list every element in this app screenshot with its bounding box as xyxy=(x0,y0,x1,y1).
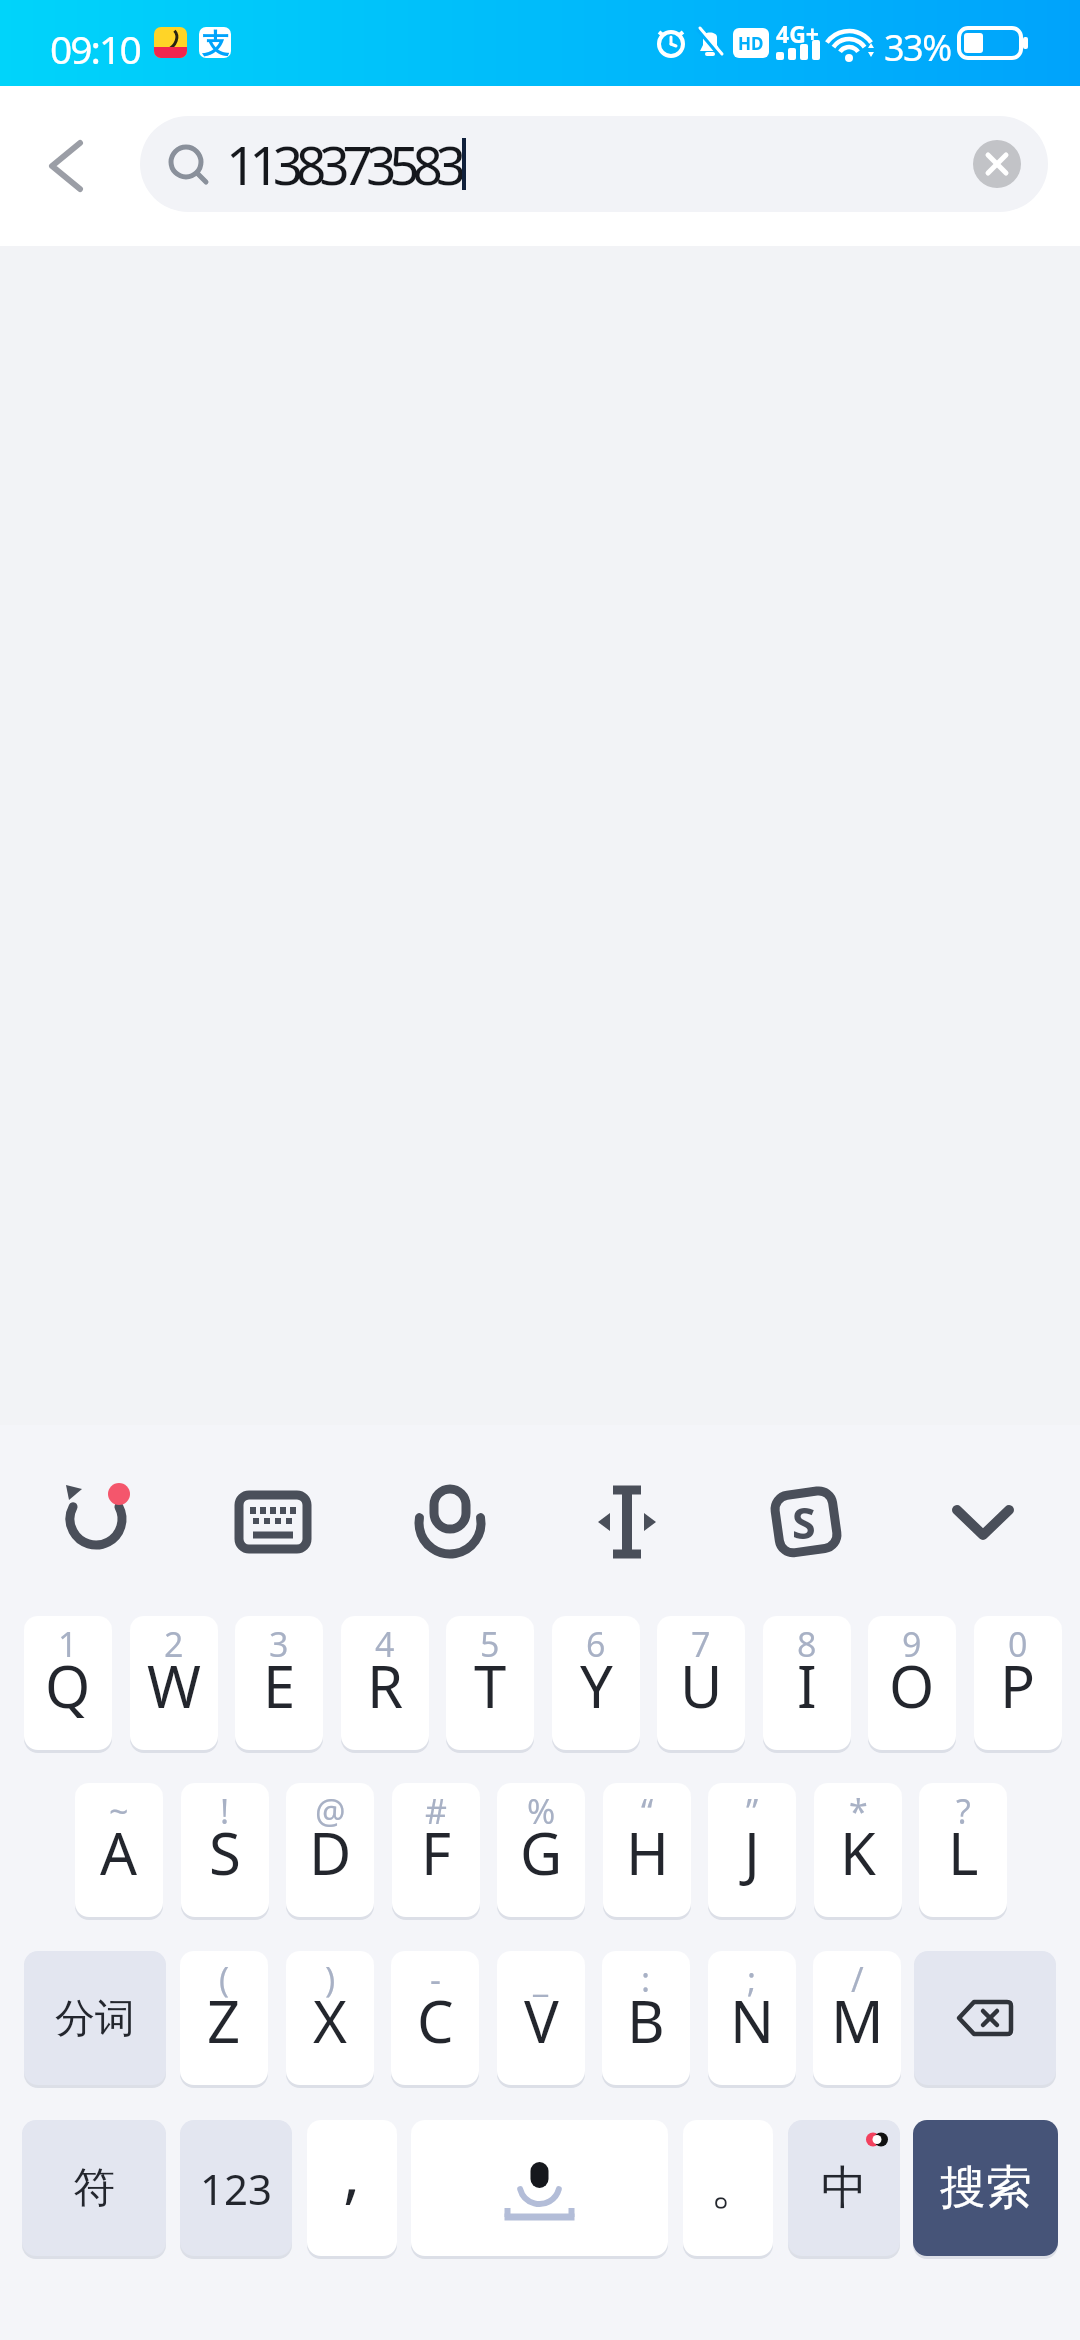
staticText: “ xyxy=(641,1788,654,1834)
button[interactable]: 中 xyxy=(788,2120,900,2256)
button[interactable]: 1 xyxy=(24,1616,112,1750)
staticText: / xyxy=(851,1956,864,2002)
button[interactable]: 2 xyxy=(130,1616,218,1750)
staticText: P xyxy=(1000,1646,1036,1725)
button[interactable]: 8 xyxy=(763,1616,851,1750)
button[interactable] xyxy=(973,140,1021,188)
button[interactable]: 4 xyxy=(341,1616,429,1750)
button[interactable]: ? xyxy=(919,1783,1007,1917)
button[interactable]: ” xyxy=(708,1783,796,1917)
staticText: 。 xyxy=(710,2153,762,2219)
button[interactable]: _ xyxy=(497,1951,585,2085)
staticText: 0 xyxy=(1008,1621,1028,1667)
button[interactable]: 3 xyxy=(235,1616,323,1750)
staticText: ” xyxy=(746,1788,759,1834)
staticText: 搜索 xyxy=(940,2159,1032,2217)
staticText: 5 xyxy=(480,1621,500,1667)
staticText: Q xyxy=(45,1646,91,1725)
staticText: G xyxy=(520,1813,563,1892)
button[interactable] xyxy=(582,1477,672,1567)
staticText: 4 xyxy=(375,1621,395,1667)
button[interactable]: ! xyxy=(181,1783,269,1917)
staticText: # xyxy=(425,1788,447,1834)
staticText: Z xyxy=(207,1981,241,2060)
staticText: 09:10 xyxy=(50,22,140,75)
button[interactable]: 0 xyxy=(974,1616,1062,1750)
button[interactable]: - xyxy=(391,1951,479,2085)
staticText: 9 xyxy=(902,1621,922,1667)
staticText: 6 xyxy=(586,1621,606,1667)
staticText: D xyxy=(309,1813,352,1892)
staticText: ) xyxy=(325,1956,336,2002)
staticText: % xyxy=(527,1788,556,1834)
staticText: Y xyxy=(580,1646,613,1725)
staticText: 符 xyxy=(73,2162,115,2215)
button[interactable]: S xyxy=(760,1477,850,1567)
button[interactable]: # xyxy=(392,1783,480,1917)
button[interactable]: 符 xyxy=(22,2120,166,2256)
button[interactable]: 1138373583 xyxy=(140,116,1048,212)
staticText: L xyxy=(948,1813,979,1892)
button[interactable]: 123 xyxy=(180,2120,292,2256)
staticText: S xyxy=(209,1813,241,1892)
button[interactable]: ( xyxy=(180,1951,268,2085)
staticText: 33% xyxy=(884,23,951,72)
button[interactable] xyxy=(914,1951,1056,2085)
button[interactable]: * xyxy=(814,1783,902,1917)
button[interactable]: 5 xyxy=(446,1616,534,1750)
button[interactable]: , xyxy=(307,2120,397,2256)
staticText: 1 xyxy=(58,1621,78,1667)
staticText: N xyxy=(730,1981,775,2060)
staticText: HD xyxy=(738,32,764,55)
staticText: T xyxy=(474,1646,507,1725)
staticText: B xyxy=(627,1981,665,2060)
staticText: O xyxy=(889,1646,935,1725)
button[interactable]: “ xyxy=(603,1783,691,1917)
button[interactable]: 分词 xyxy=(24,1951,166,2085)
button[interactable] xyxy=(411,2120,668,2256)
staticText: 4G+ xyxy=(776,18,819,49)
staticText: A xyxy=(100,1813,138,1892)
staticText: 支 xyxy=(202,27,229,58)
button[interactable] xyxy=(938,1477,1028,1567)
staticText: H xyxy=(626,1813,669,1892)
button[interactable]: 6 xyxy=(552,1616,640,1750)
staticText: 123 xyxy=(200,2160,273,2217)
button[interactable]: : xyxy=(602,1951,690,2085)
staticText: V xyxy=(524,1981,559,2060)
button[interactable]: ~ xyxy=(75,1783,163,1917)
button[interactable]: @ xyxy=(286,1783,374,1917)
staticText: W xyxy=(147,1646,201,1725)
button[interactable] xyxy=(405,1477,495,1567)
staticText: R xyxy=(367,1646,404,1725)
staticText: ? xyxy=(956,1788,971,1834)
staticText: 7 xyxy=(691,1621,711,1667)
staticText: K xyxy=(840,1813,876,1892)
button[interactable]: 9 xyxy=(868,1616,956,1750)
button[interactable]: % xyxy=(497,1783,585,1917)
staticText: 1138373583 xyxy=(226,128,460,200)
staticText: 8 xyxy=(797,1621,817,1667)
button[interactable]: 。 xyxy=(683,2120,773,2256)
staticText: ( xyxy=(219,1956,230,2002)
staticText: * xyxy=(849,1788,868,1834)
staticText: S xyxy=(792,1493,816,1552)
staticText: 2 xyxy=(164,1621,184,1667)
staticText: J xyxy=(744,1813,760,1892)
button[interactable]: ; xyxy=(708,1951,796,2085)
button[interactable]: 7 xyxy=(657,1616,745,1750)
button[interactable] xyxy=(30,131,100,201)
staticText: 分词 xyxy=(55,1993,135,2043)
button[interactable] xyxy=(55,1477,145,1567)
staticText: U xyxy=(680,1646,723,1725)
staticText: M xyxy=(831,1981,884,2060)
button[interactable]: / xyxy=(813,1951,901,2085)
button[interactable]: ) xyxy=(286,1951,374,2085)
button[interactable] xyxy=(228,1477,318,1567)
staticText: @ xyxy=(315,1788,346,1834)
staticText: 中 xyxy=(821,2159,867,2217)
button[interactable]: 搜索 xyxy=(913,2120,1058,2256)
staticText: F xyxy=(421,1813,452,1892)
staticText: E xyxy=(263,1646,296,1725)
staticText: 3 xyxy=(269,1621,289,1667)
